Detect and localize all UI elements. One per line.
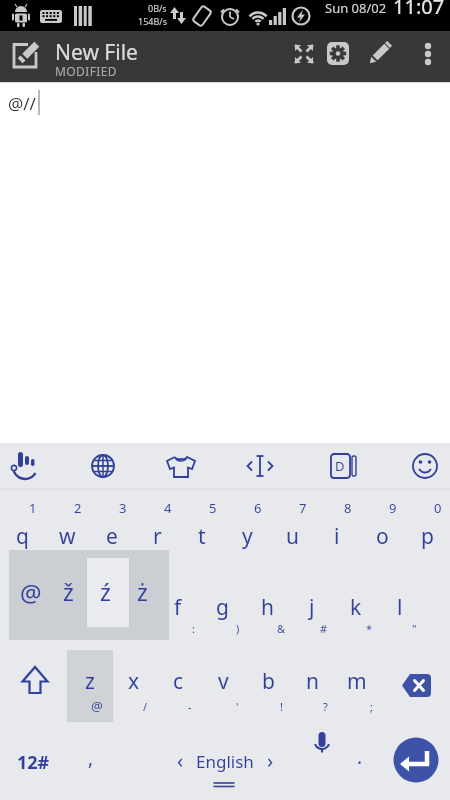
staticText: &: [277, 621, 286, 636]
button[interactable]: [0, 443, 56, 487]
button[interactable]: [202, 643, 247, 722]
button[interactable]: [203, 565, 248, 643]
staticText: 3: [119, 499, 127, 517]
staticText: @//: [8, 92, 36, 115]
button[interactable]: [45, 487, 90, 565]
staticText: ›: [267, 747, 274, 774]
staticText: MODIFIED: [55, 63, 118, 78]
button[interactable]: [357, 31, 401, 82]
button[interactable]: [0, 643, 67, 722]
button[interactable]: [67, 643, 112, 722]
button[interactable]: [315, 487, 360, 565]
staticText: q: [16, 522, 29, 551]
staticText: 1: [29, 499, 37, 517]
staticText: *: [366, 621, 373, 636]
staticText: 8: [344, 499, 352, 517]
button[interactable]: [309, 443, 375, 487]
staticText: p: [421, 522, 434, 551]
button[interactable]: [337, 643, 382, 722]
staticText: x: [128, 667, 140, 696]
staticText: c: [173, 667, 184, 696]
staticText: ': [236, 699, 239, 714]
staticText: 0: [434, 499, 442, 517]
button[interactable]: [158, 565, 203, 643]
button[interactable]: [247, 643, 292, 722]
staticText: w: [59, 522, 76, 551]
staticText: m: [347, 667, 367, 696]
button[interactable]: [227, 443, 293, 487]
button[interactable]: [157, 643, 202, 722]
staticText: k: [350, 593, 362, 622]
staticText: 4: [164, 499, 172, 517]
button[interactable]: [90, 487, 135, 565]
button[interactable]: [405, 487, 450, 565]
button[interactable]: [0, 722, 68, 800]
staticText: v: [218, 667, 229, 696]
button[interactable]: [382, 643, 450, 722]
button[interactable]: [225, 487, 270, 565]
button[interactable]: [68, 565, 113, 643]
button[interactable]: [248, 565, 293, 643]
button[interactable]: [180, 487, 225, 565]
button[interactable]: [112, 643, 157, 722]
staticText: y: [242, 522, 253, 551]
button[interactable]: [390, 722, 450, 800]
staticText: @: [91, 697, 103, 715]
staticText: New File: [55, 38, 138, 64]
button[interactable]: [2, 33, 50, 81]
staticText: !: [280, 699, 283, 714]
staticText: English: [196, 750, 254, 773]
staticText: o: [376, 522, 389, 551]
button[interactable]: [310, 722, 390, 800]
staticText: 7: [299, 499, 307, 517]
button[interactable]: [23, 565, 68, 643]
staticText: n: [306, 667, 319, 696]
button[interactable]: [135, 487, 180, 565]
button[interactable]: [135, 722, 310, 800]
button[interactable]: [0, 487, 45, 565]
staticText: g: [216, 593, 229, 622]
button[interactable]: [113, 565, 158, 643]
staticText: :: [192, 621, 195, 636]
button[interactable]: [292, 643, 337, 722]
staticText: f: [174, 593, 182, 622]
button[interactable]: [360, 487, 405, 565]
button[interactable]: [282, 31, 326, 82]
staticText: 9: [389, 499, 397, 517]
button[interactable]: [392, 443, 450, 487]
staticText: ": [412, 621, 417, 636]
staticText: /: [143, 699, 148, 714]
staticText: -: [188, 699, 192, 714]
staticText: z: [85, 667, 95, 696]
staticText: 5: [209, 499, 217, 517]
button[interactable]: [326, 31, 370, 82]
staticText: e: [106, 522, 118, 551]
staticText: 12#: [17, 750, 50, 775]
button[interactable]: [406, 31, 450, 82]
staticText: .: [357, 744, 363, 770]
staticText: ,: [88, 745, 94, 771]
staticText: ;: [370, 699, 373, 714]
button[interactable]: [68, 722, 135, 800]
button[interactable]: [293, 565, 338, 643]
staticText: l: [397, 593, 403, 622]
staticText: ‹: [177, 747, 184, 774]
staticText: @: [20, 576, 42, 609]
staticText: ž: [63, 576, 74, 607]
button[interactable]: [70, 443, 136, 487]
staticText: r: [153, 522, 162, 551]
staticText: ź: [100, 576, 111, 607]
button[interactable]: [338, 565, 383, 643]
staticText: ?: [323, 699, 328, 714]
staticText: 6: [254, 499, 262, 517]
staticText: 0B/s: [148, 2, 167, 14]
staticText: t: [198, 522, 206, 551]
button[interactable]: [270, 487, 315, 565]
staticText: j: [309, 593, 315, 622]
button[interactable]: [383, 565, 428, 643]
staticText: 154B/s: [138, 15, 167, 27]
staticText: ż: [137, 576, 148, 607]
staticText: #: [320, 621, 328, 636]
button[interactable]: [148, 443, 214, 487]
staticText: i: [334, 522, 340, 551]
